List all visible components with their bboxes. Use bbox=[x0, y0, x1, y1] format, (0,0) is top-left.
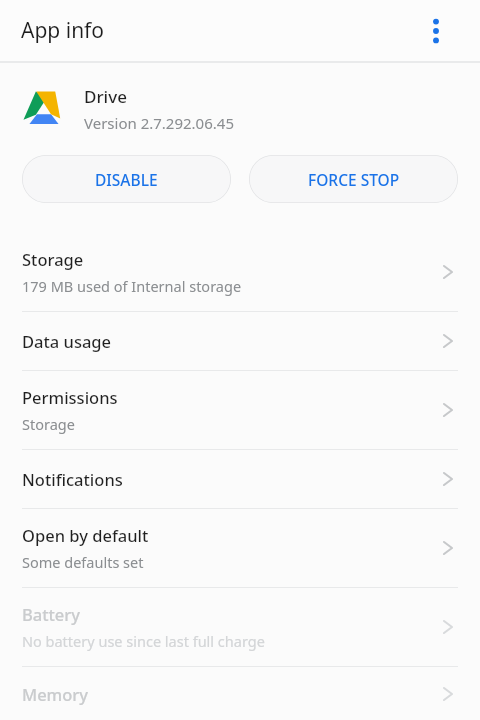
button[interactable]: Permissions bbox=[0, 371, 480, 449]
staticText: Open by default bbox=[22, 524, 149, 546]
staticText: App info bbox=[21, 16, 105, 45]
button[interactable]: Memory bbox=[0, 667, 480, 720]
staticText: Permissions bbox=[22, 386, 118, 408]
staticText: Notifications bbox=[22, 468, 123, 490]
staticText: Data usage bbox=[22, 330, 112, 352]
button[interactable]: More options bbox=[422, 17, 450, 45]
staticText: 179 MB used of Internal storage bbox=[22, 276, 242, 296]
staticText: Some defaults set bbox=[22, 552, 144, 572]
staticText: Drive bbox=[84, 85, 127, 108]
button[interactable]: Storage bbox=[0, 233, 480, 311]
staticText: No battery use since last full charge bbox=[22, 631, 265, 651]
button[interactable]: DISABLE bbox=[22, 155, 231, 203]
staticText: Memory bbox=[22, 683, 89, 705]
staticText: Battery bbox=[22, 603, 81, 625]
staticText: DISABLE bbox=[95, 169, 158, 190]
staticText: Version 2.7.292.06.45 bbox=[84, 113, 234, 133]
staticText: Storage bbox=[22, 414, 75, 434]
staticText: FORCE STOP bbox=[308, 169, 400, 190]
button[interactable]: FORCE STOP bbox=[249, 155, 458, 203]
staticText: Storage bbox=[22, 248, 84, 270]
button[interactable]: Battery bbox=[0, 588, 480, 666]
button[interactable]: Open by default bbox=[0, 509, 480, 587]
button[interactable]: Data usage bbox=[0, 312, 480, 370]
button[interactable]: Notifications bbox=[0, 450, 480, 508]
